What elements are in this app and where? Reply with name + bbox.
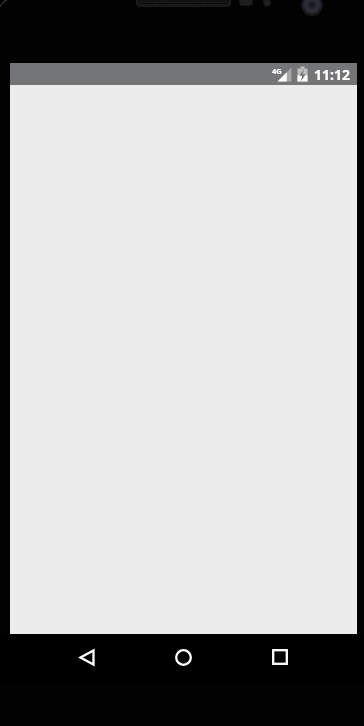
button[interactable]: Back <box>63 633 111 681</box>
staticText: 11:12 <box>314 65 350 84</box>
button[interactable]: Home <box>159 633 207 681</box>
button[interactable]: Recent apps <box>256 633 304 681</box>
staticText: 4G <box>272 66 282 76</box>
